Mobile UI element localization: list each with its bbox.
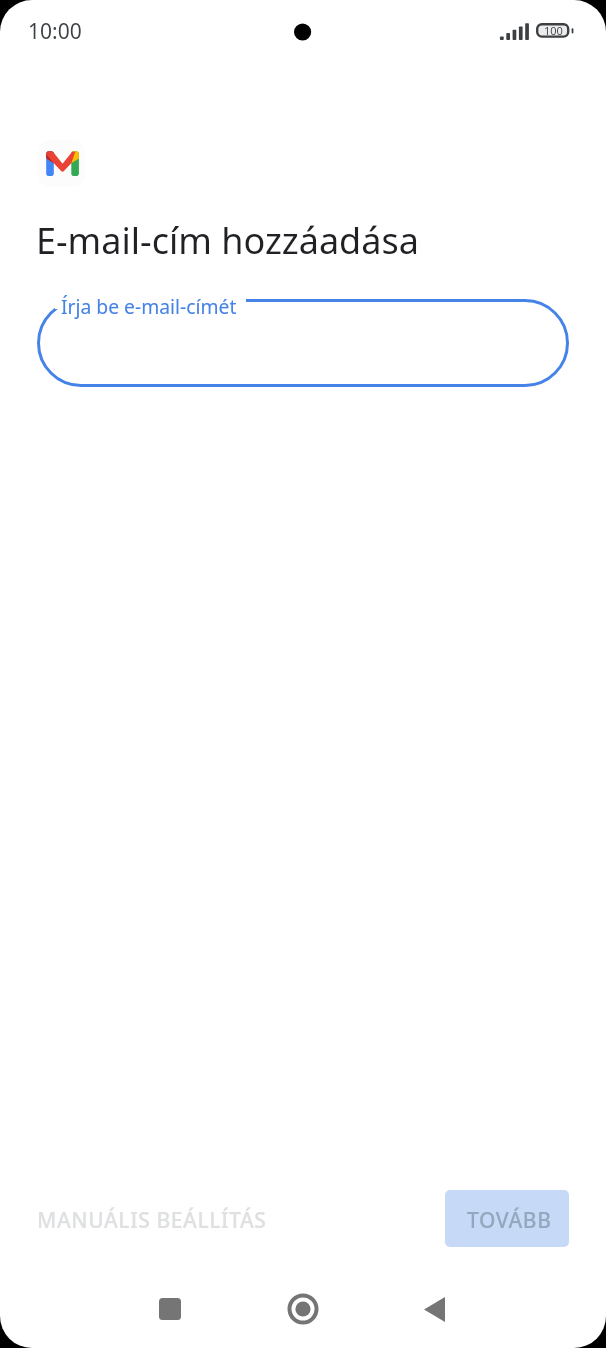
button[interactable]: MANUÁLIS BEÁLLÍTÁS: [25, 1196, 279, 1245]
button[interactable]: Back: [406, 1281, 462, 1337]
staticText: MANUÁLIS BEÁLLÍTÁS: [37, 1206, 267, 1235]
staticText: 100: [544, 23, 563, 38]
staticText: 10:00: [28, 17, 82, 46]
staticText: TOVÁBB: [467, 1206, 552, 1235]
button[interactable]: Home: [275, 1281, 331, 1337]
button[interactable]: Recent apps: [142, 1281, 198, 1337]
button[interactable]: Írja be e-mail-címét: [37, 299, 569, 387]
button[interactable]: TOVÁBB: [445, 1190, 569, 1247]
staticText: E-mail-cím hozzáadása: [36, 216, 419, 265]
staticText: Írja be e-mail-címét: [61, 293, 237, 319]
